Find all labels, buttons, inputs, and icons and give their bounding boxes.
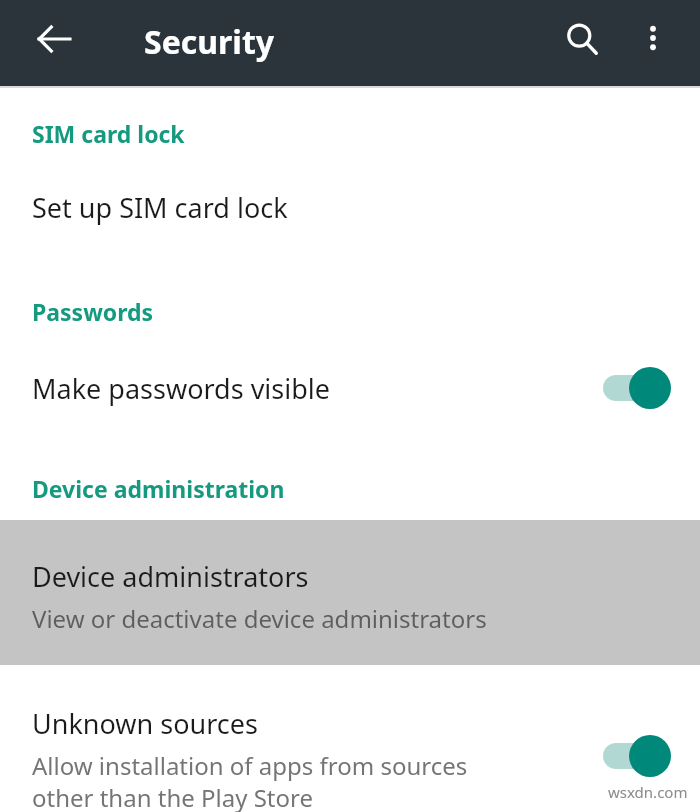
button[interactable]: More options <box>624 9 682 67</box>
button[interactable]: Make passwords visible <box>0 327 700 411</box>
staticText: Make passwords visible <box>32 370 331 407</box>
staticText: Device administrators <box>32 558 309 595</box>
button[interactable]: Search <box>552 9 612 69</box>
button[interactable]: Unknown sources toggle <box>602 733 674 779</box>
staticText: Unknown sources <box>32 705 258 742</box>
staticText: View or deactivate device administrators <box>32 602 487 635</box>
staticText: Security <box>144 20 275 64</box>
staticText: SIM card lock <box>32 118 185 149</box>
button[interactable]: Unknown sources <box>0 665 700 812</box>
staticText: Set up SIM card lock <box>32 189 288 226</box>
staticText: wsxdn.com <box>608 782 688 802</box>
staticText: Passwords <box>32 296 154 327</box>
staticText: Allow installation of apps from sources … <box>32 749 468 812</box>
button[interactable]: Make passwords visible toggle <box>602 365 674 411</box>
button[interactable]: Set up SIM card lock <box>0 149 700 226</box>
button[interactable]: Device administrators <box>0 520 700 665</box>
staticText: Device administration <box>32 473 285 504</box>
button[interactable]: Back <box>24 9 84 69</box>
